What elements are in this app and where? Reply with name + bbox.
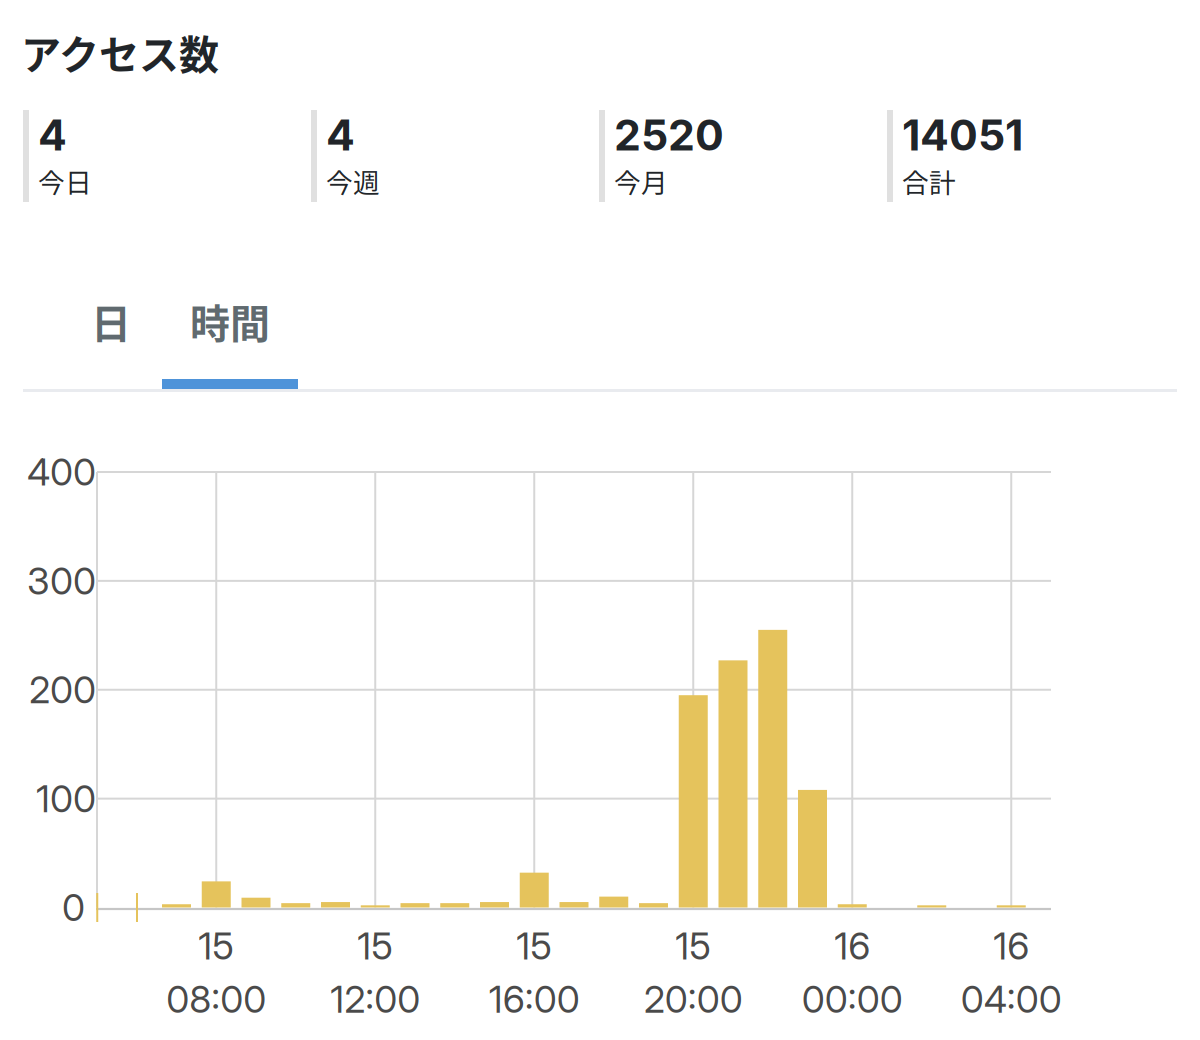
staticText: 08:00	[166, 976, 266, 1022]
button[interactable]: 時間	[162, 284, 298, 358]
staticText: 15	[516, 923, 552, 968]
staticText: 300	[27, 558, 96, 603]
staticText: 16	[993, 923, 1029, 968]
staticText: 04:00	[961, 976, 1062, 1022]
staticText: アクセス数	[21, 23, 219, 81]
staticText: 14051	[902, 109, 1023, 161]
staticText: 4	[326, 109, 355, 161]
staticText: 2520	[614, 109, 724, 161]
staticText: 0	[62, 885, 85, 930]
staticText: 今月	[614, 162, 668, 200]
button[interactable]: 日	[76, 284, 146, 358]
staticText: 15	[357, 923, 393, 968]
button[interactable]: 4	[311, 110, 599, 202]
staticText: 200	[29, 667, 96, 712]
staticText: 15	[198, 923, 234, 968]
staticText: 合計	[902, 162, 956, 200]
staticText: 4	[38, 109, 67, 161]
staticText: 20:00	[644, 976, 743, 1022]
staticText: 今週	[326, 162, 380, 200]
staticText: 400	[27, 449, 96, 495]
button[interactable]: 14051	[887, 110, 1175, 202]
staticText: 00:00	[802, 976, 903, 1022]
staticText: 時間	[190, 292, 270, 350]
button[interactable]: 2520	[599, 110, 887, 202]
staticText: 16	[834, 923, 870, 968]
button[interactable]: 4	[23, 110, 311, 202]
staticText: 日	[91, 292, 131, 350]
staticText: 100	[36, 776, 96, 821]
staticText: 15	[675, 923, 711, 968]
staticText: 12:00	[330, 976, 420, 1022]
staticText: 今日	[38, 162, 92, 200]
staticText: 16:00	[489, 976, 580, 1022]
